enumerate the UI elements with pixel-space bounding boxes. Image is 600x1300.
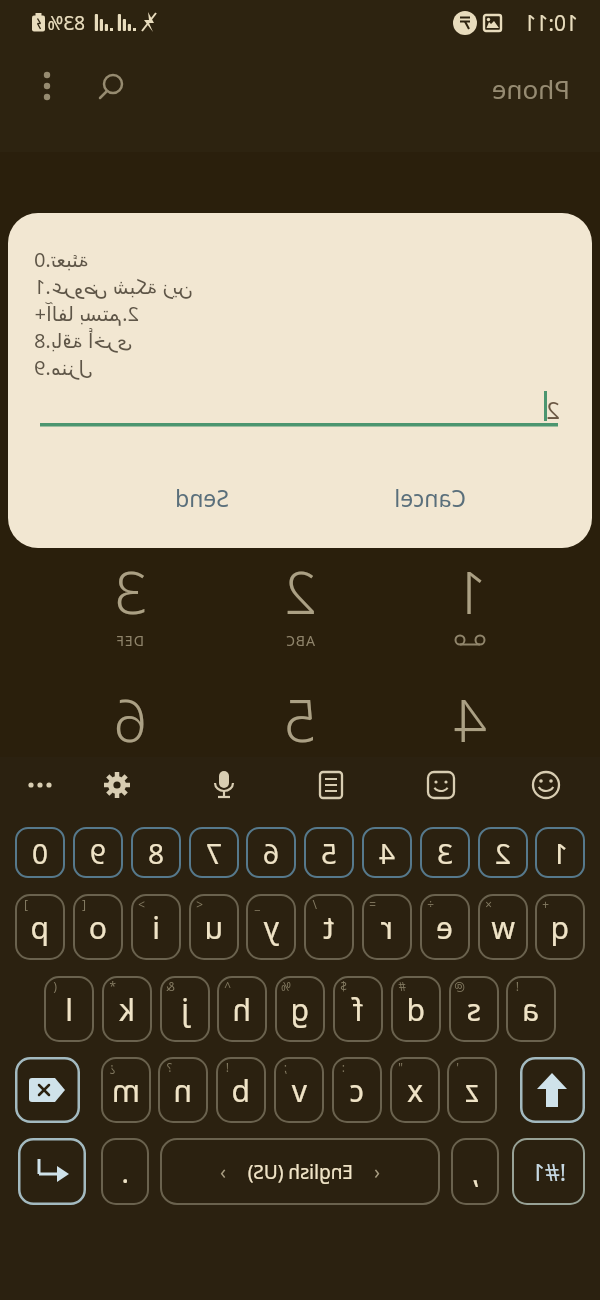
button[interactable] bbox=[89, 62, 137, 110]
button[interactable]: 2 bbox=[478, 827, 528, 878]
button[interactable] bbox=[200, 761, 248, 809]
staticText: Send bbox=[175, 482, 229, 513]
staticText: p bbox=[30, 907, 49, 948]
button[interactable]: p bbox=[15, 894, 65, 960]
staticText: 8.باقة أخرى bbox=[34, 327, 133, 354]
button[interactable]: Cancel bbox=[370, 475, 490, 519]
button[interactable] bbox=[93, 761, 141, 809]
button[interactable]: Send bbox=[142, 475, 262, 519]
button[interactable]: t bbox=[304, 894, 354, 960]
button[interactable]: z bbox=[447, 1057, 497, 1123]
button[interactable]: 9 bbox=[73, 827, 123, 878]
staticText: _ bbox=[254, 896, 260, 912]
staticText: h bbox=[232, 989, 251, 1030]
staticText: 5 bbox=[320, 834, 337, 872]
button[interactable]: k bbox=[102, 976, 152, 1042]
button[interactable] bbox=[15, 1057, 80, 1123]
button[interactable]: e bbox=[420, 894, 470, 960]
button[interactable]: f bbox=[333, 976, 383, 1042]
button[interactable]: 0 bbox=[15, 827, 65, 878]
button[interactable]: s bbox=[449, 976, 499, 1042]
button[interactable]: u bbox=[189, 894, 239, 960]
staticText: t bbox=[323, 907, 334, 948]
staticText: $ bbox=[340, 978, 347, 994]
staticText: / bbox=[312, 896, 317, 912]
button[interactable]: 6 bbox=[246, 827, 296, 878]
staticText: & bbox=[166, 978, 175, 994]
staticText: e bbox=[436, 907, 453, 948]
button[interactable]: , bbox=[451, 1138, 499, 1205]
button[interactable]: English (US) bbox=[160, 1138, 440, 1205]
button[interactable]: n bbox=[158, 1057, 208, 1123]
staticText: ¿ bbox=[109, 1059, 115, 1075]
staticText: ! bbox=[225, 1059, 229, 1075]
button[interactable]: 3 bbox=[420, 827, 470, 878]
staticText: s bbox=[466, 989, 481, 1030]
button[interactable]: x bbox=[390, 1057, 440, 1123]
button[interactable] bbox=[70, 556, 190, 666]
button[interactable]: . bbox=[101, 1138, 149, 1205]
button[interactable]: r bbox=[362, 894, 412, 960]
button[interactable]: a bbox=[506, 976, 556, 1042]
staticText: 83% bbox=[47, 10, 85, 36]
button[interactable]: 5 bbox=[304, 827, 354, 878]
button[interactable]: d bbox=[391, 976, 441, 1042]
button[interactable] bbox=[410, 676, 530, 756]
staticText: ] bbox=[24, 896, 28, 912]
staticText: 2 bbox=[546, 393, 560, 421]
staticText: * bbox=[109, 978, 116, 994]
button[interactable] bbox=[240, 556, 360, 666]
button[interactable] bbox=[16, 761, 64, 809]
staticText: % bbox=[281, 978, 291, 994]
button[interactable] bbox=[240, 676, 360, 756]
button[interactable]: c bbox=[332, 1057, 382, 1123]
button[interactable]: b bbox=[216, 1057, 266, 1123]
button[interactable]: j bbox=[160, 976, 210, 1042]
staticText: v bbox=[291, 1070, 307, 1111]
button[interactable]: q bbox=[535, 894, 585, 960]
staticText: : bbox=[341, 1059, 345, 1075]
button[interactable]: v bbox=[274, 1057, 324, 1123]
button[interactable] bbox=[520, 1057, 585, 1123]
button[interactable]: 8 bbox=[131, 827, 181, 878]
button[interactable] bbox=[18, 1138, 86, 1205]
staticText: c bbox=[349, 1070, 364, 1111]
button[interactable]: h bbox=[217, 976, 267, 1042]
staticText: × bbox=[485, 896, 492, 912]
staticText: a bbox=[522, 989, 539, 1030]
button[interactable]: m bbox=[101, 1057, 151, 1123]
button[interactable]: !#1 bbox=[512, 1138, 585, 1205]
button[interactable]: o bbox=[73, 894, 123, 960]
button[interactable]: 7 bbox=[189, 827, 239, 878]
staticText: j bbox=[181, 989, 189, 1030]
staticText: Phone bbox=[491, 71, 570, 106]
button[interactable]: l bbox=[44, 976, 94, 1042]
button[interactable] bbox=[23, 62, 71, 110]
staticText: d bbox=[406, 989, 425, 1030]
staticText: 4 bbox=[378, 834, 395, 872]
staticText: o bbox=[88, 907, 107, 948]
staticText: = bbox=[369, 896, 376, 912]
staticText: ÷ bbox=[427, 896, 434, 912]
staticText: ‹ bbox=[374, 1159, 380, 1185]
staticText: k bbox=[118, 989, 135, 1030]
button[interactable]: 1 bbox=[535, 827, 585, 878]
staticText: 1.عروض شبكة زين bbox=[34, 273, 194, 300]
button[interactable] bbox=[307, 761, 355, 809]
staticText: Cancel bbox=[394, 482, 466, 513]
staticText: y bbox=[263, 907, 279, 948]
button[interactable]: g bbox=[275, 976, 325, 1042]
staticText: ' bbox=[456, 1059, 459, 1075]
button[interactable] bbox=[417, 761, 465, 809]
button[interactable]: i bbox=[131, 894, 181, 960]
staticText: 9.منزل bbox=[34, 354, 94, 381]
button[interactable] bbox=[70, 676, 190, 756]
button[interactable] bbox=[522, 761, 570, 809]
staticText: ABC bbox=[285, 631, 315, 650]
staticText: 2. bbox=[122, 300, 139, 327]
button[interactable]: y bbox=[246, 894, 296, 960]
staticText: . bbox=[121, 1153, 129, 1191]
button[interactable]: w bbox=[478, 894, 528, 960]
button[interactable]: 4 bbox=[362, 827, 412, 878]
button[interactable] bbox=[410, 556, 530, 666]
